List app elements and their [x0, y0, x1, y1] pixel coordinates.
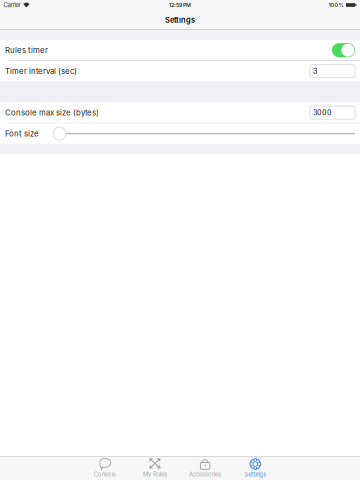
- staticText: Console: [94, 471, 116, 478]
- staticText: Timer interval (sec): [5, 66, 77, 76]
- staticText: Settings: [165, 15, 195, 24]
- staticText: 3: [313, 67, 317, 75]
- staticText: Font size: [5, 129, 39, 138]
- staticText: Carrier: [3, 1, 20, 9]
- staticText: 3000: [313, 108, 332, 117]
- button[interactable]: Font size: [0, 123, 360, 144]
- staticText: 100%: [329, 2, 344, 8]
- button[interactable]: Settings: [230, 456, 280, 480]
- button[interactable]: Console: [80, 456, 130, 480]
- button[interactable]: Timer interval (sec): [0, 61, 360, 81]
- button[interactable]: Rules timer: [0, 40, 360, 60]
- staticText: 12:59 PM: [169, 2, 191, 8]
- staticText: Console max size (bytes): [5, 108, 99, 117]
- button[interactable]: My Rules: [130, 456, 180, 480]
- staticText: Rules timer: [5, 45, 48, 55]
- staticText: My Rules: [143, 471, 167, 478]
- button[interactable]: Console max size (bytes): [0, 102, 360, 123]
- staticText: Accessories: [189, 471, 221, 478]
- staticText: Settings: [244, 471, 266, 478]
- button[interactable]: Accessories: [180, 456, 230, 480]
